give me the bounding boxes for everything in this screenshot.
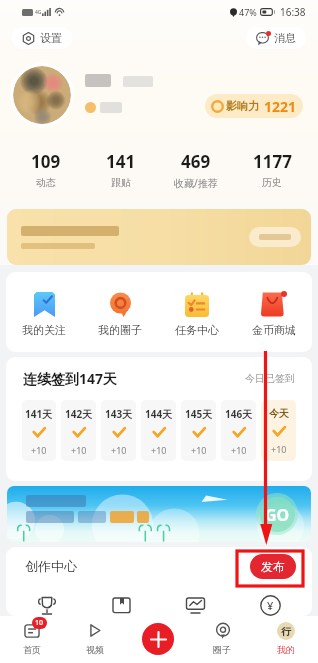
staticText: 469 (181, 150, 211, 173)
button[interactable]: 今天 (261, 400, 296, 461)
staticText: 47% (239, 6, 257, 18)
button[interactable]: 141 (83, 150, 158, 189)
staticText: 金币商城 (252, 323, 296, 337)
staticText: 141天 (25, 407, 53, 421)
staticText: 144天 (145, 407, 173, 421)
staticText: 今日已签到 (245, 372, 295, 385)
button[interactable]: 我的关注 (6, 291, 82, 337)
button[interactable]: GO (7, 486, 311, 542)
staticText: 今天 (269, 407, 289, 420)
staticText: 首页 (23, 644, 41, 655)
staticText: 4G (35, 9, 42, 16)
staticText: 动态 (36, 176, 56, 189)
staticText: GO (265, 504, 290, 526)
button[interactable]: 任务中心 (158, 291, 235, 337)
staticText: +10 (151, 444, 167, 456)
staticText: +10 (191, 444, 207, 456)
staticText: 跟贴 (111, 176, 131, 189)
button[interactable]: 设置 (12, 27, 72, 49)
staticText: 我的圈子 (98, 323, 142, 337)
button[interactable]: 146天 (221, 400, 256, 461)
button[interactable]: 142天 (61, 400, 96, 461)
staticText: 创作中心 (25, 558, 77, 574)
staticText: 我的关注 (22, 323, 66, 337)
button[interactable]: 收益 (233, 595, 308, 616)
staticText: 行 (281, 625, 291, 638)
button[interactable] (7, 209, 311, 265)
button[interactable]: 视频 (63, 622, 126, 663)
button[interactable]: 发布 (142, 623, 174, 655)
staticText: 视频 (86, 644, 104, 655)
staticText: 109 (31, 150, 61, 173)
staticText: 历史 (262, 176, 282, 189)
button[interactable]: 1177 (234, 150, 310, 189)
button[interactable]: 145天 (181, 400, 216, 461)
button[interactable]: GO (256, 493, 298, 535)
staticText: 143天 (105, 407, 133, 421)
button[interactable]: 金币商城 (235, 291, 312, 337)
button[interactable]: 排行榜 (10, 595, 84, 616)
staticText: 145天 (185, 407, 213, 421)
button[interactable]: 发布 (250, 554, 296, 579)
button[interactable]: 109 (8, 150, 83, 189)
staticText: 消息 (274, 31, 296, 45)
button[interactable]: 影响力 (205, 94, 303, 118)
staticText: +10 (271, 443, 287, 455)
button[interactable]: 行 (254, 622, 318, 663)
staticText: +10 (71, 444, 87, 456)
staticText: 任务中心 (175, 323, 219, 337)
staticText: +10 (31, 444, 47, 456)
button[interactable]: 141天 (22, 400, 56, 461)
button[interactable]: 143天 (101, 400, 136, 461)
button[interactable]: 草稿箱 (84, 595, 158, 616)
button[interactable]: 我的圈子 (82, 291, 158, 337)
staticText: 1177 (253, 150, 292, 173)
staticText: 16:38 (280, 5, 306, 19)
button[interactable]: 469 (158, 150, 234, 190)
staticText: 影响力 (226, 99, 259, 113)
staticText: 收藏/推荐 (174, 176, 218, 190)
button[interactable]: 头像 (13, 66, 71, 124)
staticText: 发布 (261, 559, 285, 574)
staticText: ¥ (267, 598, 274, 613)
staticText: 1221 (264, 97, 297, 116)
staticText: 圈子 (213, 644, 231, 655)
staticText: 设置 (40, 31, 62, 45)
button[interactable]: 今日已签到 (245, 372, 295, 385)
button[interactable]: 消息 (246, 27, 306, 49)
staticText: +10 (231, 444, 247, 456)
button[interactable]: 圈子 (190, 622, 254, 663)
staticText: 连续签到147天 (23, 369, 118, 388)
staticText: 142天 (65, 407, 93, 421)
button[interactable]: 144天 (141, 400, 176, 461)
staticText: 141 (106, 150, 136, 173)
staticText: 10 (35, 618, 44, 628)
staticText: 146天 (225, 407, 253, 421)
button[interactable]: 数据 (158, 595, 233, 616)
button[interactable]: 10 (0, 622, 63, 663)
staticText: +10 (111, 444, 127, 456)
staticText: 我的 (277, 644, 295, 655)
